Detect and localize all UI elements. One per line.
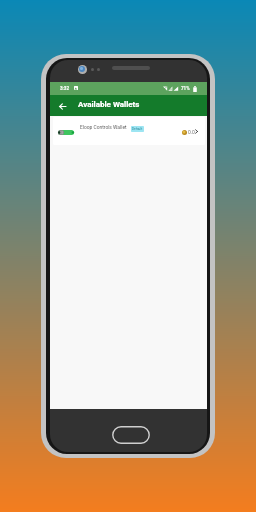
- button[interactable]: Eloop Controls Wallet: [53, 117, 205, 145]
- staticText: Default: [132, 127, 143, 131]
- staticText: 0.0: [188, 129, 195, 135]
- staticText: Eloop Controls Wallet: [80, 124, 127, 130]
- button[interactable]: Home: [112, 426, 150, 444]
- staticText: 71%: [181, 86, 190, 91]
- staticText: Available Wallets: [78, 100, 140, 109]
- staticText: 3:32: [60, 86, 70, 91]
- button[interactable]: Back: [55, 99, 70, 113]
